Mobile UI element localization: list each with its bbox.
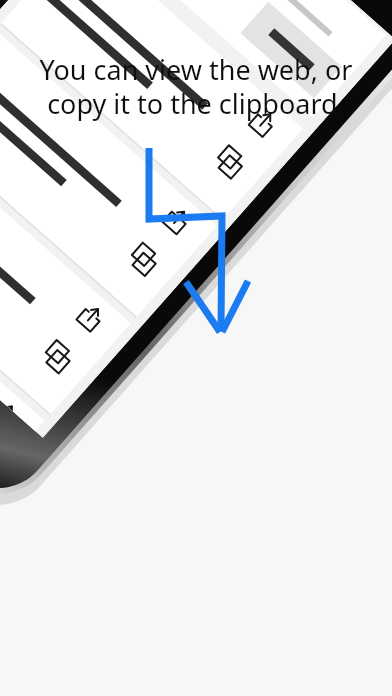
button[interactable]: Papago web view and clipboard feature xyxy=(0,0,392,696)
